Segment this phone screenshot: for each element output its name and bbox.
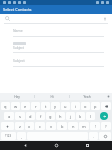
button[interactable] bbox=[1, 122, 14, 130]
staticText: Name bbox=[13, 28, 23, 33]
button[interactable]: v bbox=[46, 122, 56, 130]
button[interactable]: q bbox=[1, 102, 10, 110]
staticText: g bbox=[49, 114, 52, 119]
staticText: e bbox=[24, 104, 27, 109]
button[interactable]: c bbox=[35, 122, 45, 130]
button[interactable]: Keyboard settings bbox=[104, 93, 112, 100]
button[interactable]: Name bbox=[13, 28, 104, 37]
button[interactable]: , bbox=[17, 132, 26, 140]
button[interactable]: z bbox=[15, 122, 24, 130]
staticText: m bbox=[82, 124, 86, 129]
button[interactable]: i bbox=[71, 102, 80, 110]
staticText: b bbox=[61, 124, 64, 129]
staticText: Hi bbox=[50, 95, 54, 99]
staticText: Subject bbox=[13, 46, 24, 50]
staticText: x bbox=[28, 124, 31, 129]
staticText: p bbox=[94, 104, 97, 109]
button[interactable]: a bbox=[4, 112, 14, 120]
button[interactable]: o bbox=[81, 102, 90, 110]
staticText: d bbox=[29, 114, 32, 119]
button[interactable]: h bbox=[56, 112, 65, 120]
button[interactable]: j bbox=[66, 112, 75, 120]
staticText: f bbox=[40, 114, 42, 119]
button[interactable]: k bbox=[76, 112, 85, 120]
button[interactable]: Subject bbox=[13, 58, 104, 67]
staticText: h bbox=[59, 114, 62, 119]
staticText: t bbox=[45, 104, 47, 109]
button[interactable]: u bbox=[61, 102, 70, 110]
button[interactable]: e bbox=[21, 102, 30, 110]
staticText: n bbox=[72, 124, 75, 129]
button[interactable]: Recents bbox=[81, 141, 93, 150]
button[interactable]: d bbox=[26, 112, 35, 120]
staticText: o bbox=[84, 104, 87, 109]
staticText: Subject bbox=[13, 58, 25, 63]
staticText: k bbox=[79, 114, 82, 119]
staticText: ?123 bbox=[5, 134, 12, 138]
staticText: q bbox=[4, 104, 7, 109]
staticText: , bbox=[21, 134, 22, 139]
button[interactable]: m bbox=[79, 122, 89, 130]
staticText: l bbox=[90, 114, 92, 119]
button[interactable]: Voice search bbox=[101, 15, 108, 22]
button[interactable]: p bbox=[91, 102, 100, 110]
button[interactable]: f bbox=[36, 112, 45, 120]
staticText: r bbox=[35, 104, 37, 109]
staticText: s bbox=[19, 114, 21, 119]
staticText: . bbox=[93, 134, 94, 139]
staticText: v bbox=[50, 124, 53, 129]
button[interactable]: x bbox=[25, 122, 34, 130]
staticText: u bbox=[64, 104, 67, 109]
button[interactable]: Backspace bbox=[101, 102, 111, 110]
button[interactable]: n bbox=[68, 122, 78, 130]
button[interactable]: t bbox=[41, 102, 50, 110]
staticText: z bbox=[19, 124, 21, 129]
button[interactable]: ! bbox=[90, 122, 100, 130]
staticText: c bbox=[39, 124, 41, 129]
button[interactable]: Enter bbox=[100, 112, 108, 120]
staticText: Select Contacts bbox=[3, 7, 32, 12]
button[interactable]: Emoji bbox=[99, 132, 111, 140]
button[interactable]: Select Contacts bbox=[3, 7, 32, 12]
button[interactable]: ? bbox=[101, 122, 111, 130]
button[interactable]: Search bbox=[4, 15, 11, 22]
staticText: Hey bbox=[14, 95, 20, 99]
staticText: j bbox=[70, 114, 72, 119]
button[interactable]: Hi bbox=[35, 93, 69, 100]
button[interactable]: Back bbox=[19, 141, 31, 150]
button[interactable]: s bbox=[15, 112, 25, 120]
button[interactable]: Home bbox=[50, 141, 62, 150]
button[interactable]: b bbox=[57, 122, 67, 130]
staticText: y bbox=[54, 104, 57, 109]
staticText: i bbox=[75, 104, 77, 109]
button[interactable]: y bbox=[51, 102, 60, 110]
button[interactable]: . bbox=[89, 132, 98, 140]
button[interactable]: w bbox=[11, 102, 20, 110]
button[interactable]: Subject bbox=[13, 42, 104, 53]
button[interactable]: l bbox=[86, 112, 95, 120]
staticText: ? bbox=[105, 124, 107, 129]
staticText: a bbox=[8, 114, 11, 119]
staticText: w bbox=[14, 104, 18, 109]
button[interactable]: r bbox=[31, 102, 40, 110]
staticText: ! bbox=[95, 124, 96, 129]
button[interactable]: Yeah bbox=[70, 93, 104, 100]
button[interactable]: ?123 bbox=[1, 132, 16, 140]
staticText: Yeah bbox=[83, 95, 91, 99]
button[interactable]: g bbox=[46, 112, 55, 120]
button[interactable]: Hey bbox=[0, 93, 34, 100]
